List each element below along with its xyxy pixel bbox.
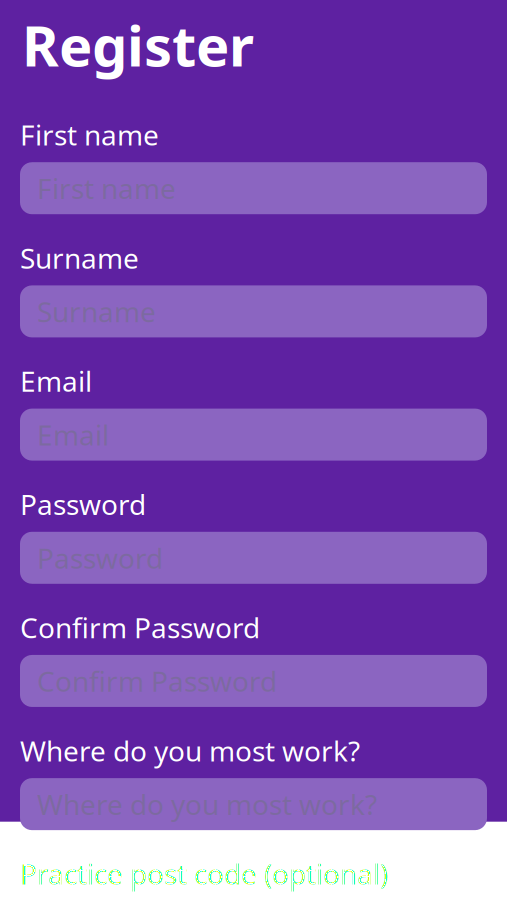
button[interactable]: Confirm Password <box>20 655 487 707</box>
staticText: Register <box>22 8 254 82</box>
button[interactable]: First name <box>20 162 487 214</box>
staticText: Where do you most work? <box>37 785 377 823</box>
staticText: Confirm Password <box>37 662 277 700</box>
button[interactable]: Password <box>20 532 487 584</box>
staticText: Email <box>20 362 92 400</box>
staticText: Email <box>37 416 109 453</box>
staticText: Surname <box>37 293 156 330</box>
staticText: Where do you most work? <box>20 732 360 769</box>
staticText: Password <box>20 486 146 523</box>
button[interactable]: Where do you most work? <box>20 778 487 830</box>
staticText: Confirm Password <box>20 609 260 646</box>
staticText: Surname <box>20 239 139 276</box>
staticText: Practice post code (optional) <box>20 855 388 892</box>
button[interactable]: Email <box>20 409 487 461</box>
button[interactable]: Surname <box>20 285 487 337</box>
staticText: Password <box>37 539 163 576</box>
staticText: First name <box>37 170 176 207</box>
staticText: First name <box>20 116 159 153</box>
